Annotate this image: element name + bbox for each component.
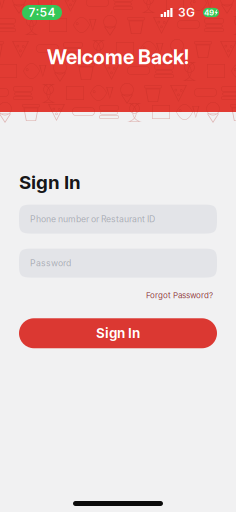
staticText: Phone number or Restaurant ID	[30, 214, 155, 224]
staticText: Sign In	[19, 171, 81, 194]
staticText: 7:54	[28, 5, 55, 20]
button[interactable]: Forgot Password?	[146, 291, 217, 300]
button[interactable]: Phone number or Restaurant ID	[19, 205, 217, 234]
button[interactable]: Sign In	[19, 318, 217, 348]
staticText: Sign In	[96, 325, 140, 341]
staticText: Forgot Password?	[146, 291, 213, 300]
staticText: 49	[204, 8, 214, 17]
staticText: Password	[30, 258, 71, 268]
staticText: Welcome Back!	[47, 45, 189, 69]
button[interactable]: Password	[19, 249, 217, 278]
staticText: 3G	[178, 5, 195, 20]
